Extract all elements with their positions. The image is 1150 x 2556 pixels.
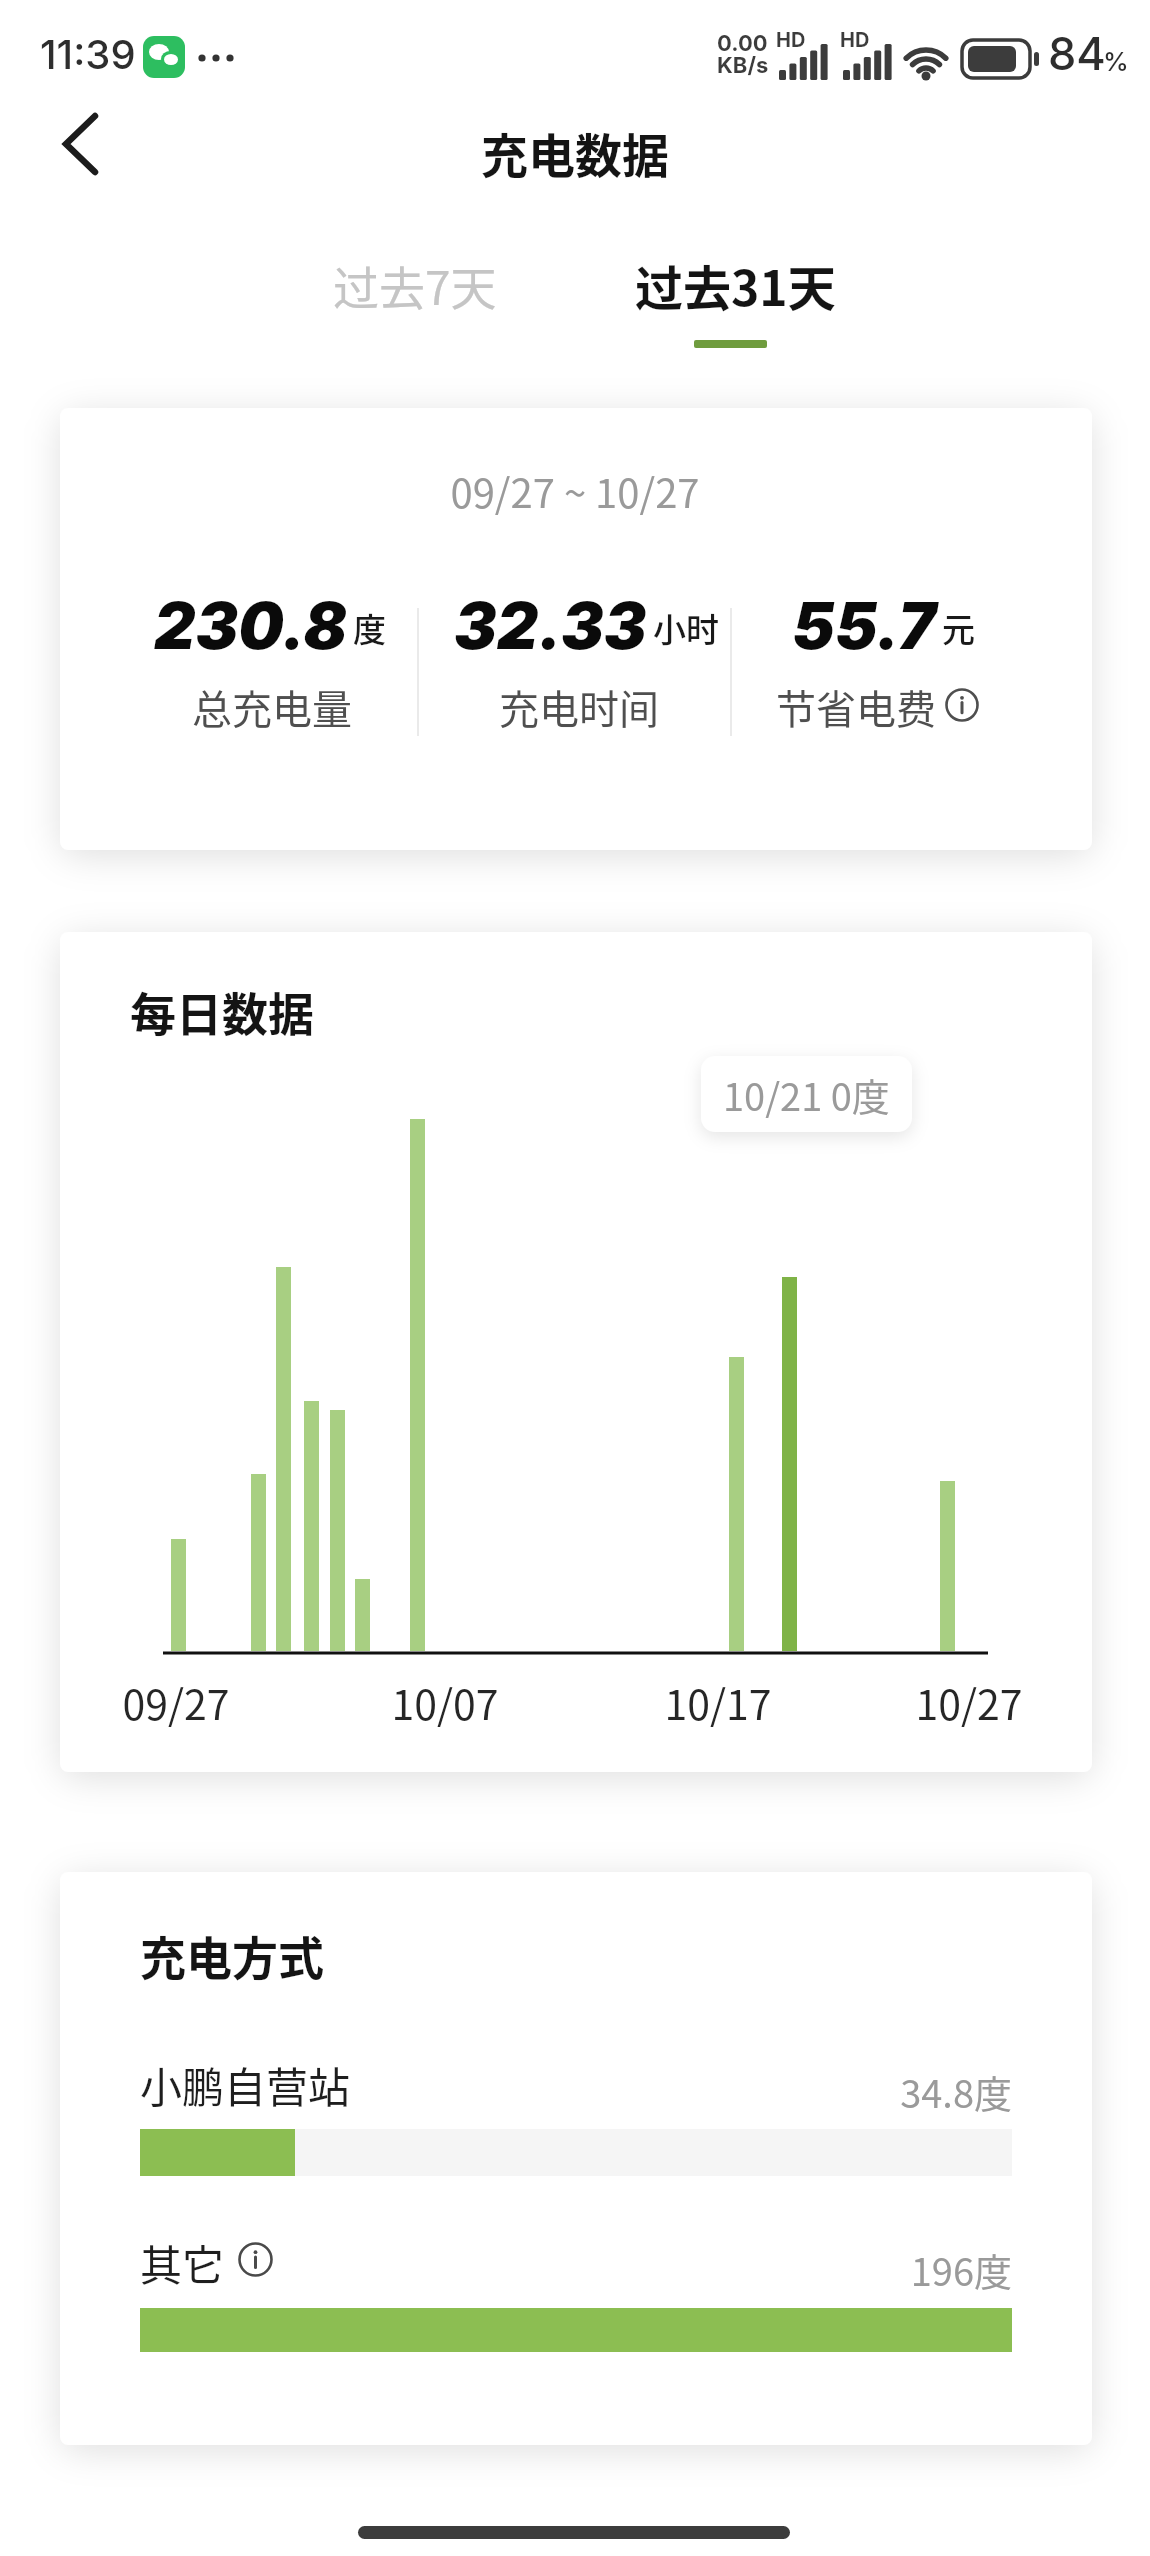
- button[interactable]: [945, 688, 979, 722]
- staticText: KB/s: [717, 52, 769, 79]
- staticText: 0.00: [717, 30, 768, 57]
- staticText: 节省电费: [776, 678, 936, 736]
- staticText: HD: [776, 28, 806, 52]
- staticText: 09/27 ~ 10/27: [450, 462, 700, 520]
- staticText: 11:39: [40, 30, 136, 78]
- staticText: 小鹏自营站: [140, 2054, 351, 2115]
- staticText: 度: [353, 604, 386, 652]
- button[interactable]: 过去31天: [625, 245, 845, 325]
- staticText: 过去7天: [333, 252, 497, 319]
- staticText: 84: [1048, 26, 1106, 80]
- staticText: 32.33: [454, 587, 647, 664]
- staticText: 10/17: [664, 1672, 772, 1731]
- staticText: 其它: [140, 2232, 225, 2293]
- button[interactable]: 过去7天: [305, 245, 525, 325]
- staticText: 196度: [140, 2242, 1012, 2297]
- staticText: 每日数据: [130, 978, 314, 1045]
- staticText: %: [1103, 46, 1129, 77]
- staticText: 230.8: [154, 587, 347, 664]
- staticText: 充电时间: [499, 678, 659, 736]
- staticText: 小时: [653, 604, 719, 652]
- staticText: 09/27: [122, 1672, 230, 1731]
- staticText: 55.7: [792, 587, 936, 664]
- staticText: 34.8度: [140, 2064, 1012, 2119]
- staticText: 元: [942, 604, 975, 652]
- staticText: 充电方式: [140, 1922, 324, 1989]
- button[interactable]: [40, 110, 110, 180]
- staticText: 过去31天: [635, 250, 836, 320]
- staticText: 充电数据: [481, 118, 669, 186]
- staticText: 总充电量: [192, 678, 352, 736]
- staticText: 10/21 0度: [723, 1067, 890, 1122]
- staticText: 10/07: [391, 1672, 499, 1731]
- button[interactable]: [238, 2242, 273, 2277]
- staticText: 10/27: [915, 1672, 1023, 1731]
- staticText: HD: [840, 28, 870, 52]
